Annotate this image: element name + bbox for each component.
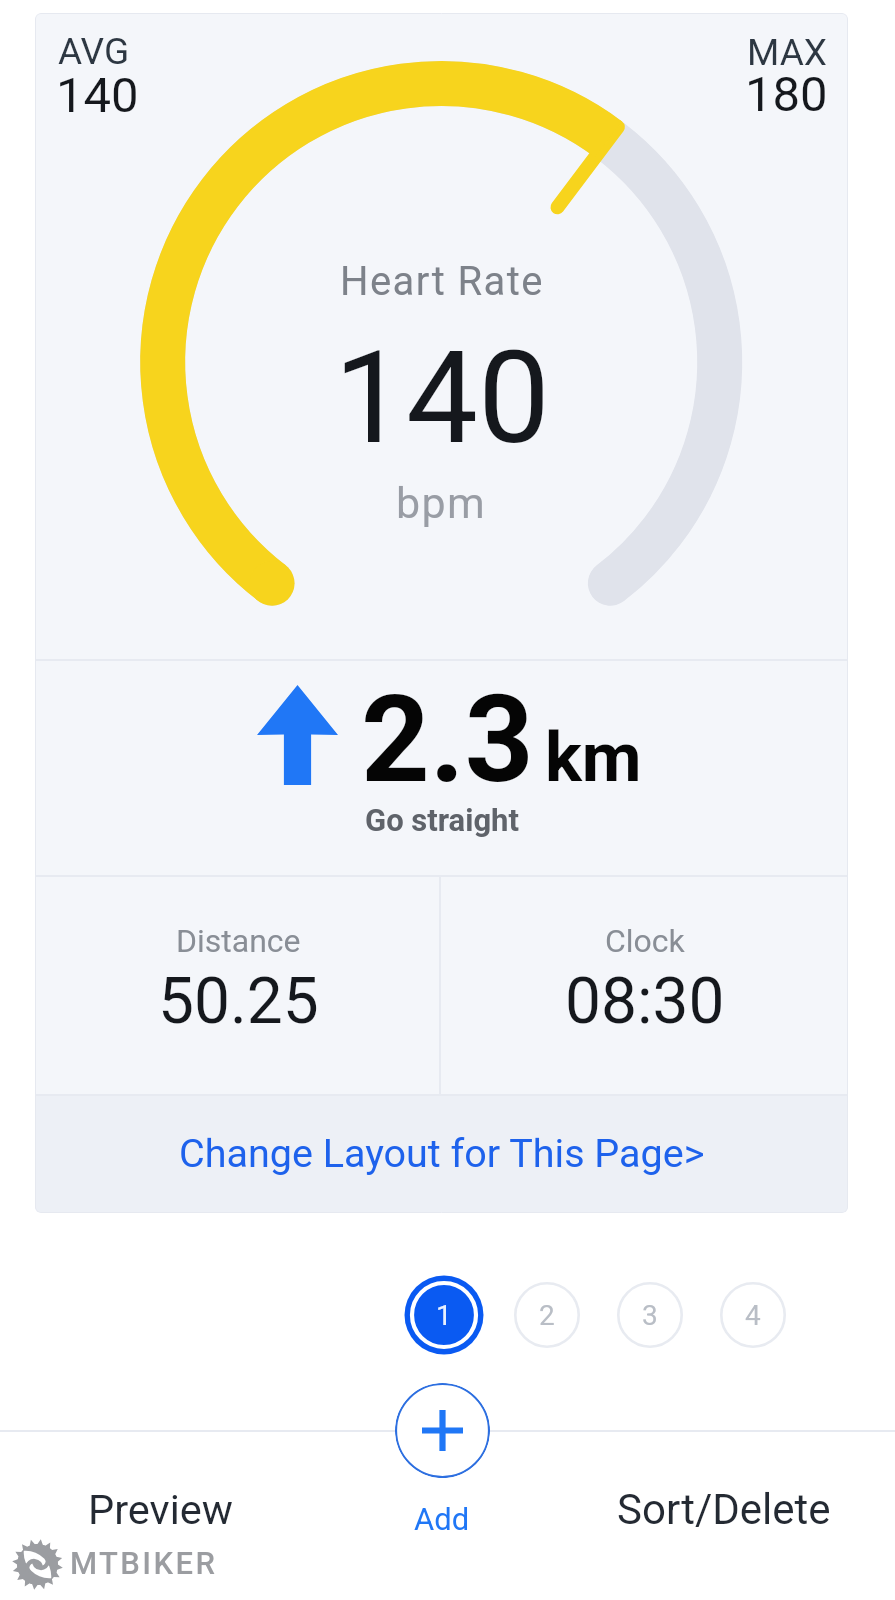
button[interactable]: Navigation, go straight 2.3 km xyxy=(35,660,848,875)
staticText: 180 xyxy=(745,66,828,123)
button[interactable]: Page 3 xyxy=(608,1273,692,1357)
staticText: 140 xyxy=(56,67,139,124)
staticText: 140 xyxy=(334,323,550,473)
button[interactable]: Clock xyxy=(441,876,848,1094)
staticText: Add xyxy=(414,1501,470,1537)
staticText: Clock xyxy=(605,922,685,960)
staticText: bpm xyxy=(396,478,487,528)
staticText: 2 xyxy=(539,1299,555,1332)
button[interactable]: Heart rate gauge, 140 bpm xyxy=(35,13,848,659)
staticText: Sort/Delete xyxy=(617,1485,831,1534)
button[interactable]: Page 2 xyxy=(505,1273,589,1357)
staticText: 50.25 xyxy=(158,964,319,1039)
staticText: Preview xyxy=(88,1485,233,1534)
staticText: 4 xyxy=(745,1299,761,1332)
staticText: Distance xyxy=(176,922,301,960)
staticText: 2.3 xyxy=(361,670,534,811)
staticText: km xyxy=(545,717,642,798)
staticText: Go straight xyxy=(365,802,519,838)
button[interactable]: Page 1 xyxy=(402,1273,486,1357)
button[interactable]: Distance xyxy=(35,876,441,1094)
staticText: MTBIKER xyxy=(70,1545,218,1581)
staticText: MAX xyxy=(747,31,827,74)
staticText: 1 xyxy=(436,1299,452,1332)
staticText: 08:30 xyxy=(565,964,725,1039)
staticText: AVG xyxy=(58,30,130,73)
button[interactable]: Preview xyxy=(40,1474,280,1544)
button[interactable]: Page 4 xyxy=(711,1273,795,1357)
staticText: Heart Rate xyxy=(340,258,544,305)
button[interactable]: Sort/Delete xyxy=(594,1474,854,1544)
button[interactable]: Add xyxy=(371,1378,513,1538)
staticText: 3 xyxy=(642,1299,658,1332)
button[interactable]: Change Layout for This Page> xyxy=(35,1094,848,1212)
staticText: Change Layout for This Page> xyxy=(179,1130,705,1176)
